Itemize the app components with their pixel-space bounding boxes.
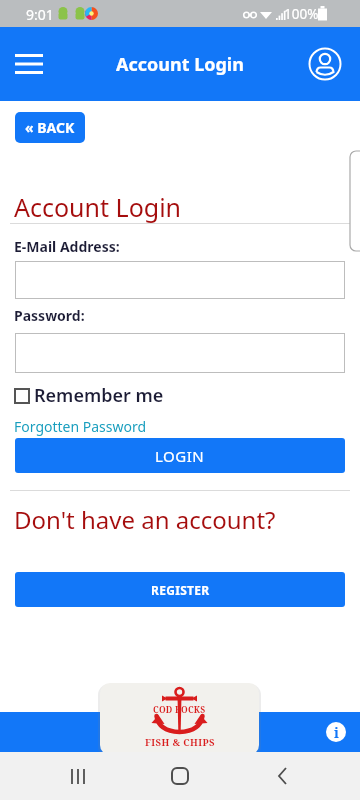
button[interactable]: i [326,722,346,742]
staticText: Password: [14,306,85,325]
button[interactable] [15,261,345,299]
staticText: i [334,723,339,742]
staticText: Account Login [14,190,182,224]
staticText: COD ROCKS [153,704,206,716]
button[interactable]: « BACK [15,112,85,143]
button[interactable]: Remember me [14,383,164,408]
button[interactable] [308,47,342,81]
button[interactable]: REGISTER [15,572,345,607]
staticText: LOGIN [155,446,205,466]
staticText: E-Mail Address: [14,237,120,256]
staticText: « BACK [25,118,75,137]
staticText: 9:01 [26,5,54,24]
button[interactable]: COD ROCKS [100,683,259,755]
button[interactable]: LOGIN [15,438,345,473]
staticText: Account Login [116,52,244,77]
staticText: REGISTER [151,582,210,598]
staticText: 100% [284,5,319,23]
staticText: Remember me [34,383,164,408]
button[interactable] [252,752,312,800]
button[interactable] [15,333,345,373]
button[interactable] [8,47,50,81]
staticText: FISH & CHIPS [145,736,215,749]
button[interactable] [150,752,210,800]
staticText: Don't have an account? [14,503,276,536]
button[interactable]: Forgotten Password [14,417,147,436]
button[interactable] [48,752,108,800]
